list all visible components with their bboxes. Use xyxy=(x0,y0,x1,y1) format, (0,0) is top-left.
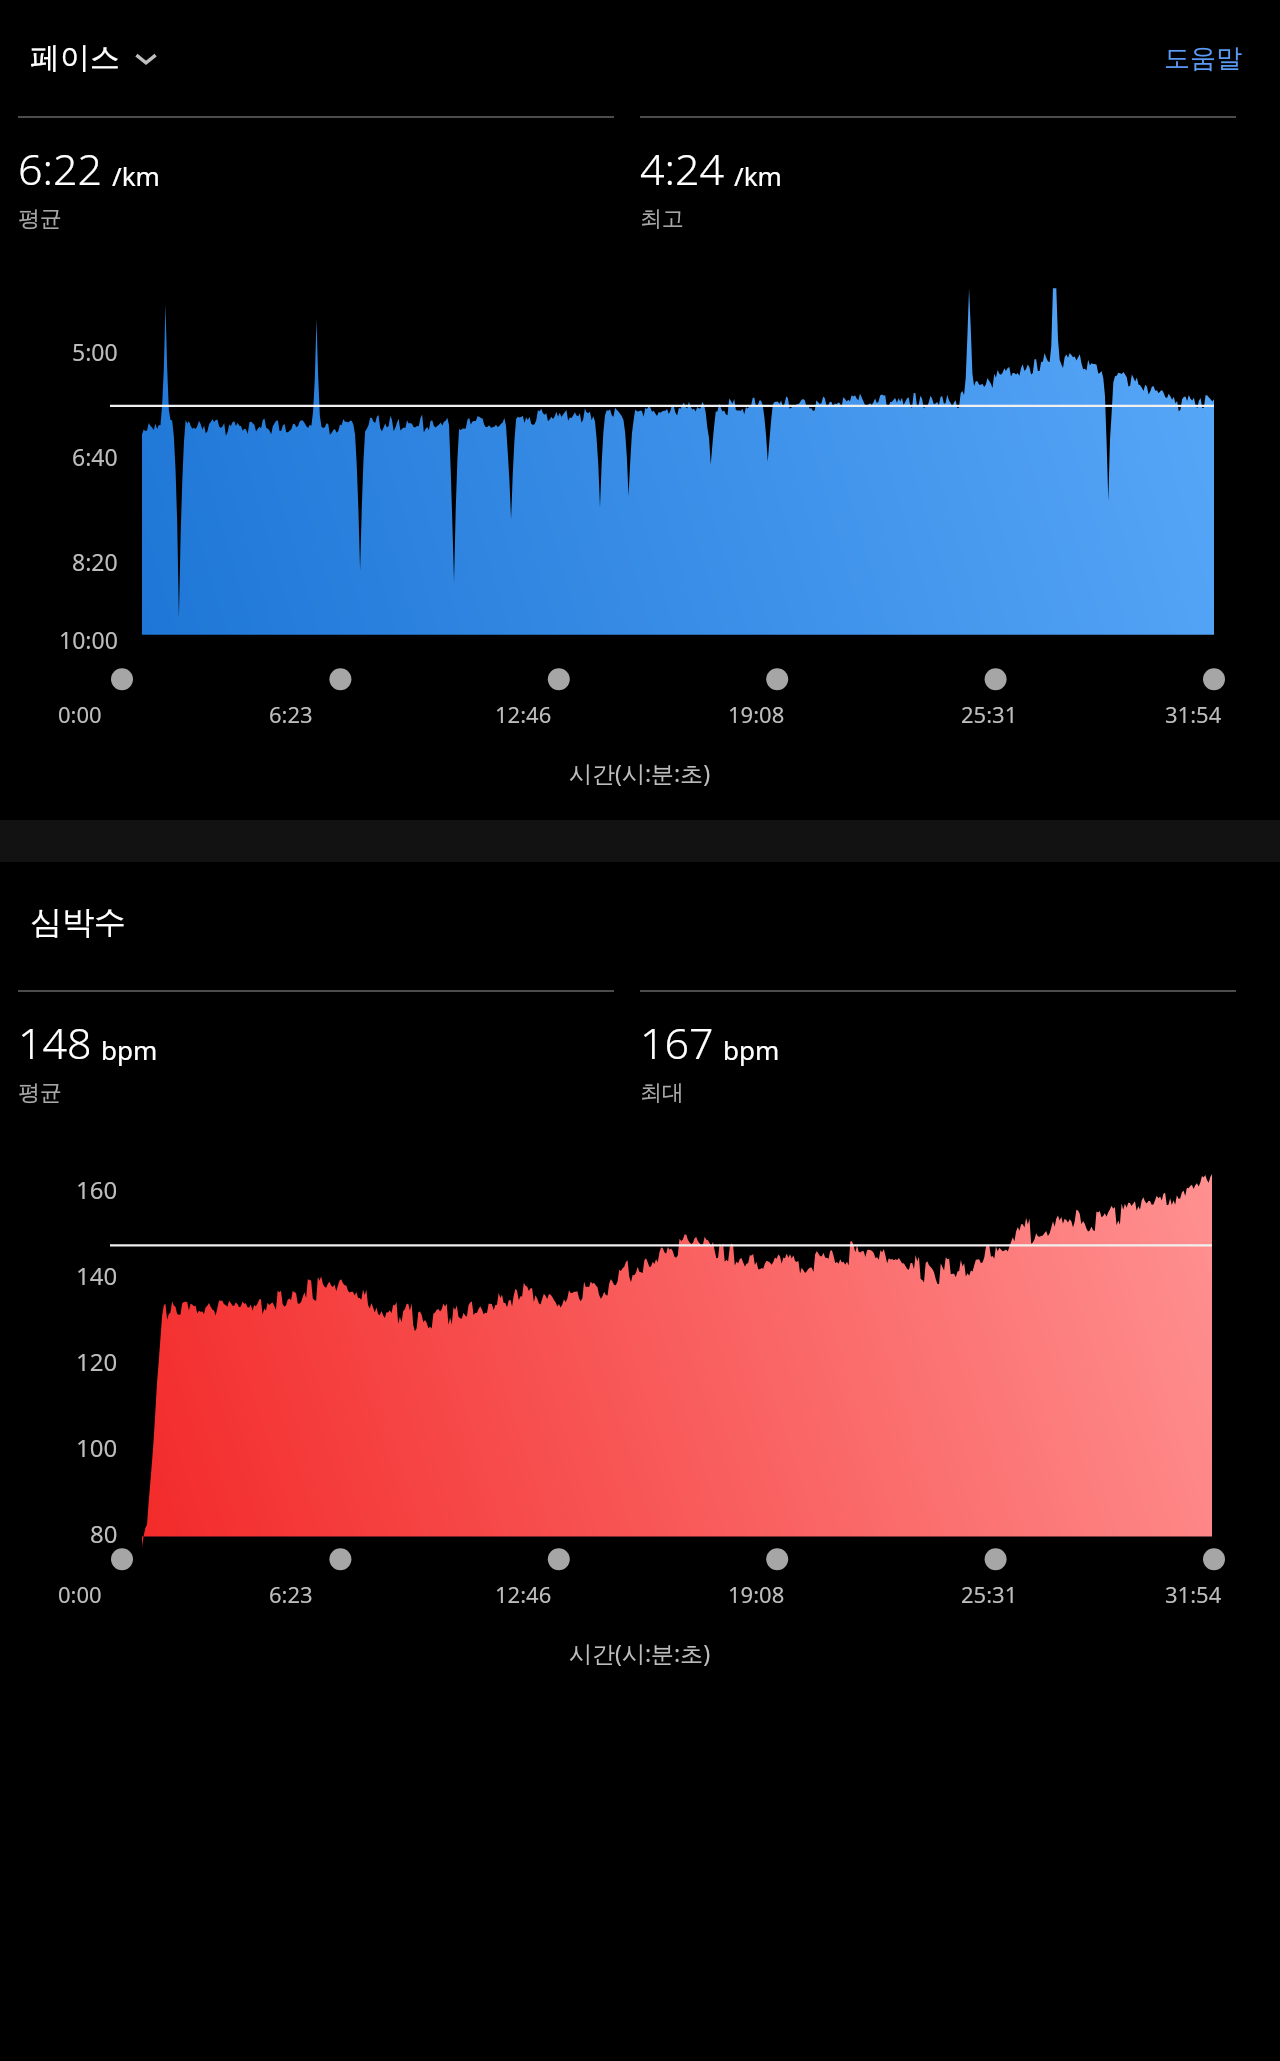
staticText: bpm xyxy=(101,1032,158,1067)
staticText: 5:00 xyxy=(72,336,118,367)
staticText: 페이스 xyxy=(30,39,120,77)
staticText: 31:54 xyxy=(1165,1579,1222,1609)
staticText: 6:22 xyxy=(18,139,103,198)
staticText: 31:54 xyxy=(1165,699,1222,729)
staticText: 25:31 xyxy=(961,1579,1018,1609)
staticText: 시간(시:분:초) xyxy=(569,1637,711,1668)
staticText: bpm xyxy=(723,1032,780,1067)
staticText: 시간(시:분:초) xyxy=(569,757,711,788)
staticText: 도움말 xyxy=(1164,42,1242,75)
staticText: 80 xyxy=(90,1517,118,1545)
staticText: 최대 xyxy=(640,1079,684,1107)
staticText: 100 xyxy=(76,1431,118,1464)
staticText: 평균 xyxy=(18,1079,62,1107)
staticText: 0:00 xyxy=(58,1579,102,1609)
staticText: 167 xyxy=(640,1013,714,1072)
staticText: 8:20 xyxy=(72,546,118,577)
staticText: 140 xyxy=(76,1259,118,1292)
staticText: 10:00 xyxy=(59,624,118,655)
staticText: /km xyxy=(734,158,782,193)
staticText: 25:31 xyxy=(961,699,1018,729)
staticText: 160 xyxy=(76,1173,118,1206)
staticText: 최고 xyxy=(640,205,684,233)
staticText: 6:40 xyxy=(72,441,118,472)
staticText: 19:08 xyxy=(728,699,785,729)
staticText: 4:24 xyxy=(640,139,725,198)
other: Change metric xyxy=(134,46,158,70)
staticText: /km xyxy=(112,158,160,193)
staticText: 6:23 xyxy=(269,699,313,729)
staticText: 평균 xyxy=(18,205,62,233)
button[interactable]: 도움말 xyxy=(1156,34,1250,83)
staticText: 19:08 xyxy=(728,1579,785,1609)
staticText: 6:23 xyxy=(269,1579,313,1609)
staticText: 심박수 xyxy=(30,902,126,942)
button[interactable]: 페이스 xyxy=(30,39,166,77)
staticText: 148 xyxy=(18,1013,92,1072)
staticText: 12:46 xyxy=(495,1579,552,1609)
staticText: 12:46 xyxy=(495,699,552,729)
staticText: 120 xyxy=(76,1345,118,1378)
staticText: 0:00 xyxy=(58,699,102,729)
